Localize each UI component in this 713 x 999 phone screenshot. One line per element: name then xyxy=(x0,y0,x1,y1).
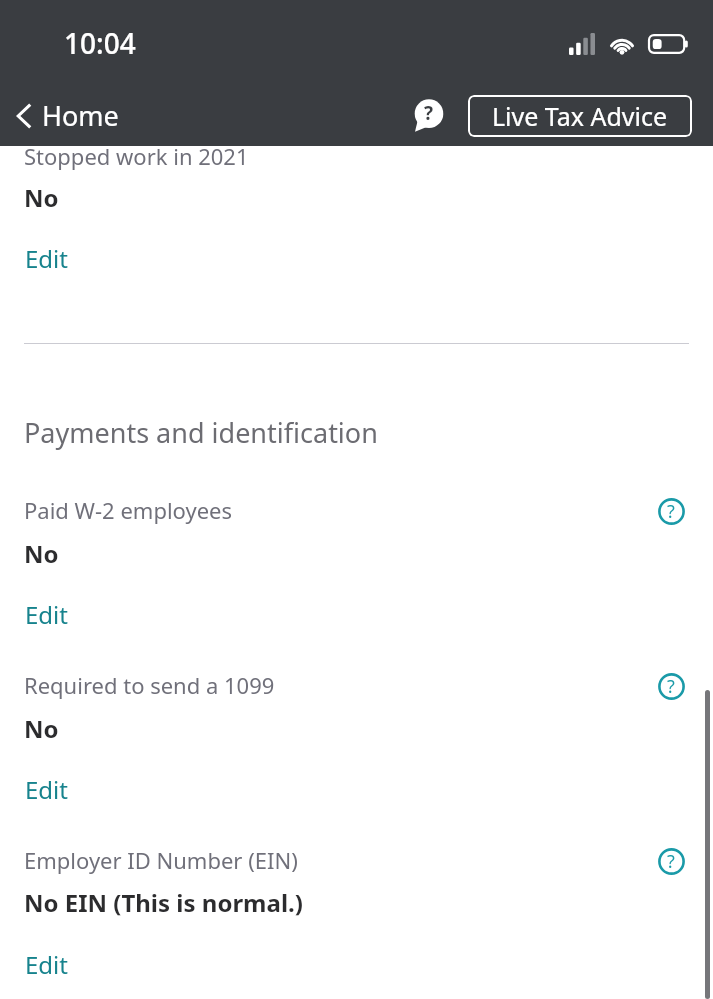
button[interactable]: Help about sending a 1099 xyxy=(652,667,690,705)
staticText: Stopped work in 2021 xyxy=(24,141,249,171)
button[interactable]: Edit xyxy=(24,946,69,983)
staticText: Edit xyxy=(25,242,68,275)
button[interactable]: Help about paid W-2 employees xyxy=(652,492,690,530)
staticText: Home xyxy=(42,97,119,134)
staticText: No EIN (This is normal.) xyxy=(24,886,303,919)
staticText: ? xyxy=(424,100,434,126)
button[interactable]: Help xyxy=(408,94,450,136)
staticText: Edit xyxy=(25,773,68,806)
staticText: No xyxy=(24,537,59,570)
staticText: Payments and identification xyxy=(24,414,378,451)
staticText: ? xyxy=(667,849,675,874)
button[interactable]: Edit xyxy=(24,596,69,633)
staticText: Employer ID Number (EIN) xyxy=(24,845,298,875)
button[interactable]: Edit xyxy=(24,240,69,277)
staticText: Paid W-2 employees xyxy=(24,495,233,525)
staticText: Live Tax Advice xyxy=(492,99,668,133)
staticText: ? xyxy=(667,499,675,524)
staticText: Edit xyxy=(25,598,68,631)
button[interactable]: Help about Employer ID Number xyxy=(652,842,690,880)
staticText: No xyxy=(24,181,59,214)
button[interactable]: Edit xyxy=(24,771,69,808)
staticText: 10:04 xyxy=(64,24,136,62)
staticText: Edit xyxy=(25,948,68,981)
button[interactable]: Live Tax Advice xyxy=(468,95,692,137)
staticText: No xyxy=(24,712,59,745)
staticText: ? xyxy=(667,674,675,699)
staticText: Required to send a 1099 xyxy=(24,670,275,700)
button[interactable]: Home xyxy=(10,93,129,138)
